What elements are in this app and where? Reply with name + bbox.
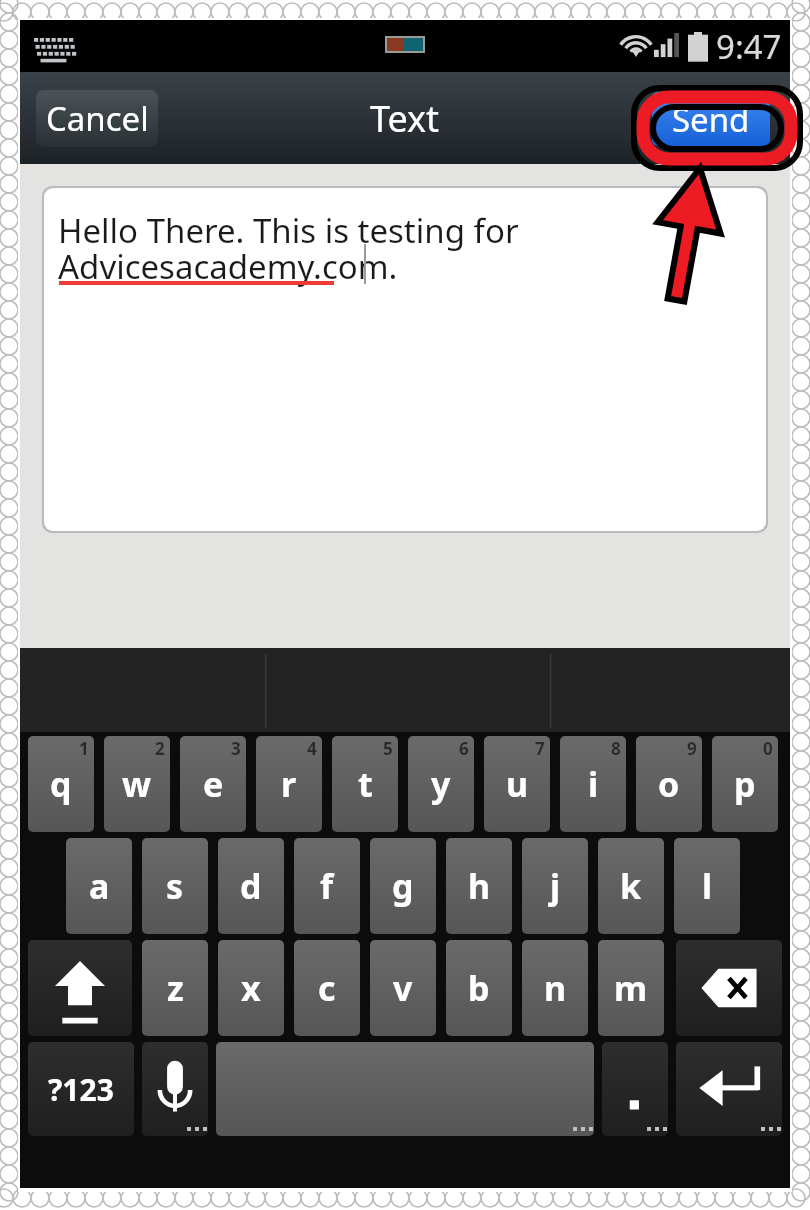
staticText: v — [393, 965, 413, 1011]
staticText: Cancel — [46, 96, 149, 141]
staticText: m — [614, 965, 648, 1011]
button[interactable]: a — [66, 838, 132, 934]
staticText: d — [240, 863, 262, 909]
button[interactable]: Key — [216, 1042, 594, 1136]
button[interactable]: t — [332, 736, 398, 832]
button[interactable]: i — [560, 736, 626, 832]
staticText: 0 — [763, 737, 773, 760]
staticText: b — [468, 965, 490, 1011]
staticText: 4 — [307, 737, 317, 760]
button[interactable]: s — [142, 838, 208, 934]
button[interactable]: Key — [676, 1042, 782, 1136]
button[interactable]: q — [28, 736, 94, 832]
staticText: s — [166, 863, 184, 909]
staticText: t — [358, 761, 373, 807]
button[interactable]: n — [522, 940, 588, 1036]
staticText: 3 — [231, 737, 241, 760]
staticText: h — [468, 863, 491, 909]
button[interactable]: Key — [28, 940, 132, 1036]
button[interactable]: f — [294, 838, 360, 934]
button[interactable]: u — [484, 736, 550, 832]
button[interactable]: v — [370, 940, 436, 1036]
staticText: g — [392, 863, 414, 909]
button[interactable]: h — [446, 838, 512, 934]
button[interactable]: m — [598, 940, 664, 1036]
button[interactable]: p — [712, 736, 778, 832]
staticText: o — [658, 761, 680, 807]
staticText: 2 — [155, 737, 165, 760]
staticText: Send — [672, 97, 750, 142]
staticText: 1 — [79, 737, 89, 760]
button[interactable]: l — [674, 838, 740, 934]
button[interactable]: Hello There. This is testing for — [44, 188, 766, 531]
staticText: i — [588, 761, 599, 807]
button[interactable]: b — [446, 940, 512, 1036]
staticText: j — [550, 863, 561, 909]
button[interactable]: k — [598, 838, 664, 934]
staticText: p — [734, 761, 756, 807]
staticText: 9 — [687, 737, 697, 760]
staticText: r — [281, 761, 297, 807]
staticText: k — [620, 863, 642, 909]
staticText: y — [431, 761, 451, 807]
button[interactable]: c — [294, 940, 360, 1036]
button[interactable]: w — [104, 736, 170, 832]
staticText: 6 — [459, 737, 469, 760]
staticText: z — [167, 965, 184, 1011]
button[interactable]: d — [218, 838, 284, 934]
button[interactable]: Key — [676, 940, 782, 1036]
staticText: Advicesacademy.com. — [58, 244, 398, 289]
staticText: u — [506, 761, 529, 807]
staticText: Hello There. This is testing for — [58, 208, 519, 253]
button[interactable]: y — [408, 736, 474, 832]
button[interactable]: Key — [602, 1042, 668, 1136]
staticText: e — [203, 761, 224, 807]
button[interactable]: z — [142, 940, 208, 1036]
staticText: Text — [370, 94, 440, 143]
staticText: x — [241, 965, 261, 1011]
staticText: 9:47 — [716, 24, 782, 69]
button[interactable]: Key — [142, 1042, 208, 1136]
staticText: f — [320, 863, 334, 909]
staticText: l — [702, 863, 713, 909]
staticText: q — [50, 761, 72, 807]
staticText: 8 — [611, 737, 621, 760]
staticText: a — [89, 863, 110, 909]
staticText: ?123 — [48, 1069, 114, 1110]
staticText: 5 — [383, 737, 393, 760]
staticText: w — [122, 761, 152, 807]
button[interactable]: Send — [652, 92, 770, 146]
button[interactable]: ?123 — [28, 1042, 134, 1136]
button[interactable]: r — [256, 736, 322, 832]
button[interactable]: o — [636, 736, 702, 832]
button[interactable]: j — [522, 838, 588, 934]
button[interactable]: g — [370, 838, 436, 934]
staticText: c — [318, 965, 336, 1011]
staticText: n — [544, 965, 567, 1011]
button[interactable]: e — [180, 736, 246, 832]
button[interactable]: Cancel — [36, 90, 158, 147]
staticText: 7 — [535, 737, 545, 760]
button[interactable]: x — [218, 940, 284, 1036]
